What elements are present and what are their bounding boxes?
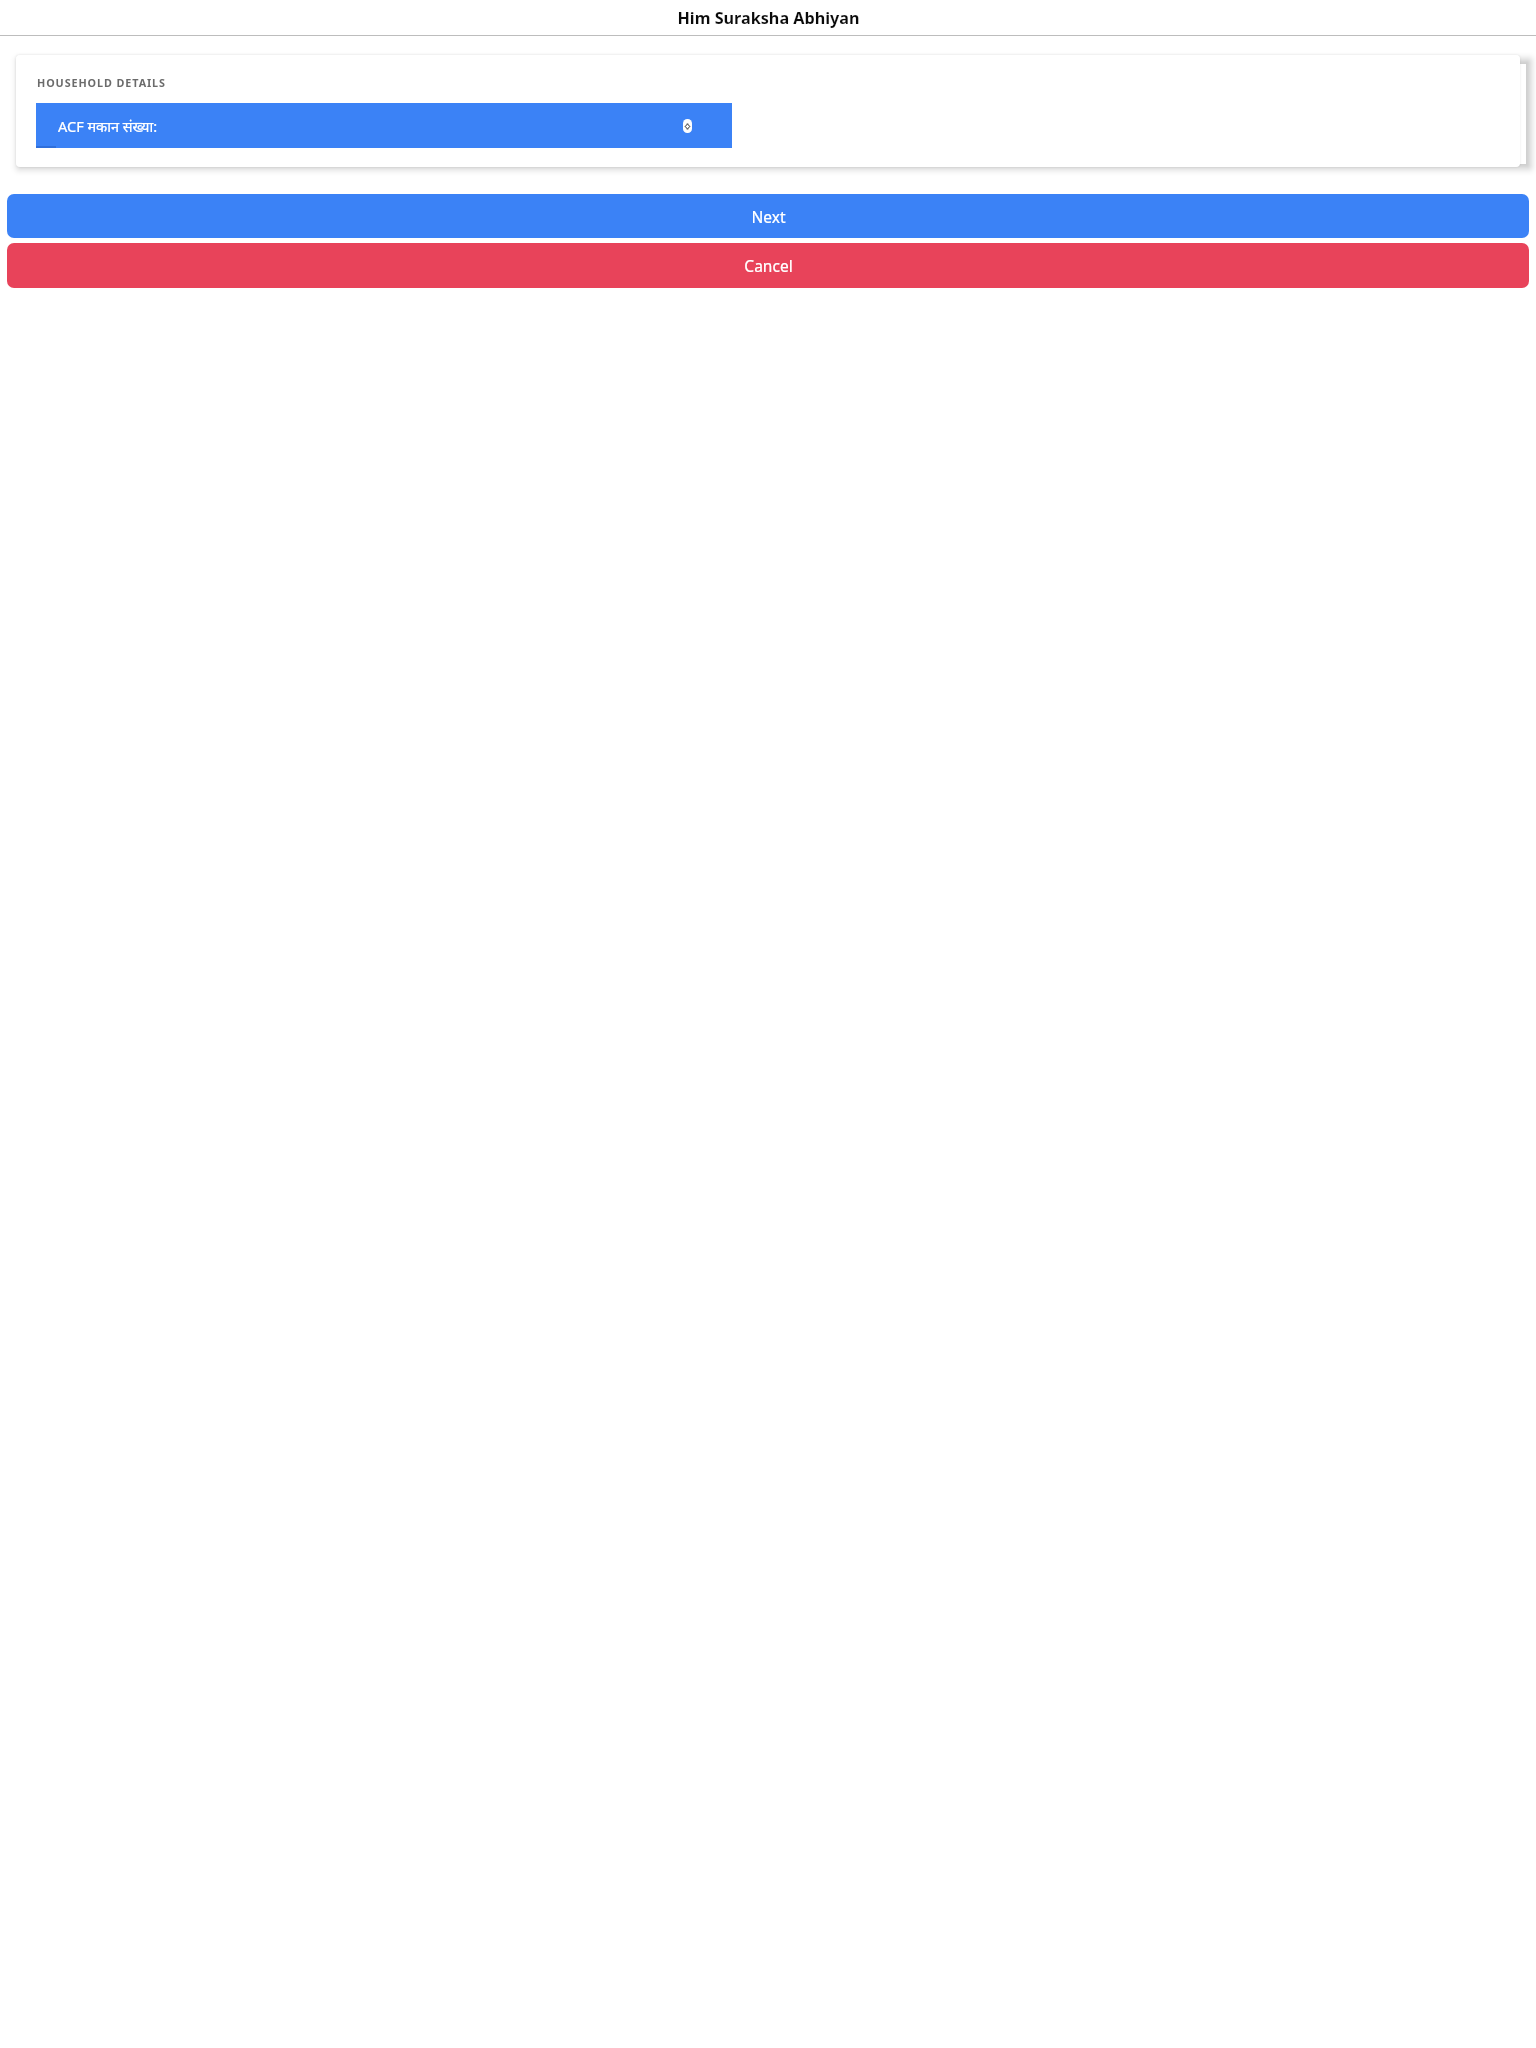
staticText: ACF मकान संख्या: [58,116,158,136]
button[interactable]: Select house number [683,119,692,133]
button[interactable]: Cancel [7,243,1529,288]
staticText: HOUSEHOLD DETAILS [37,75,166,90]
button[interactable]: Next [7,194,1529,238]
staticText: Next [751,206,786,227]
button[interactable]: ACF मकान संख्या: [36,103,732,148]
staticText: Him Suraksha Abhiyan [677,7,860,29]
staticText: Cancel [744,255,793,276]
